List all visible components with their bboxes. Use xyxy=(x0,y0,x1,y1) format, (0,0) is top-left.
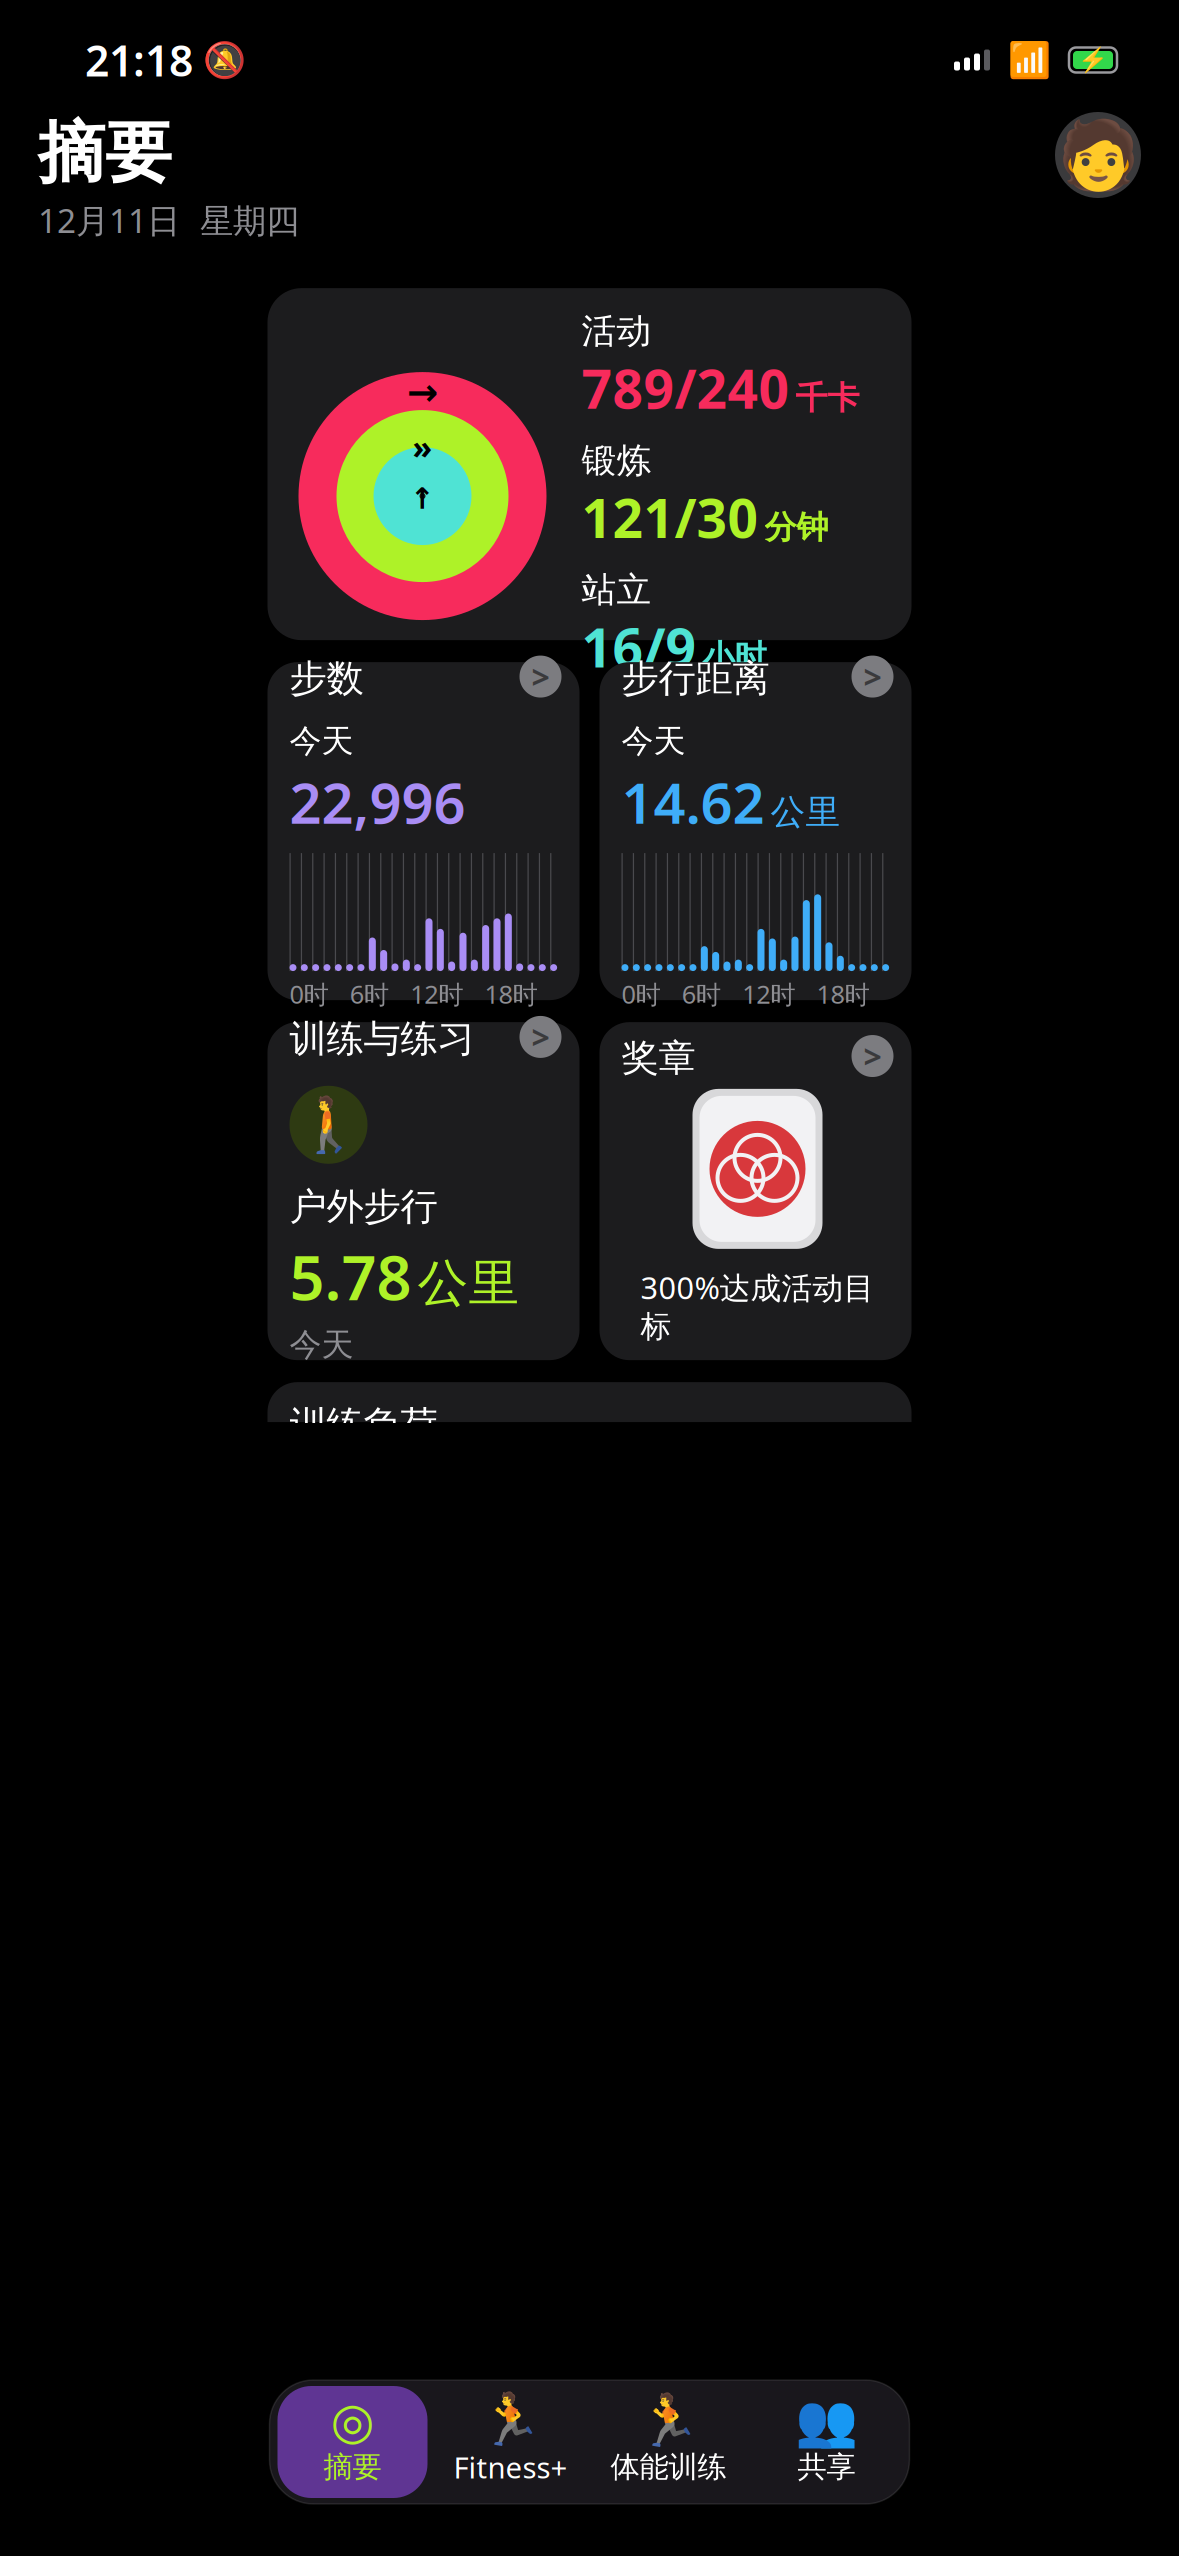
staticText: 18时 xyxy=(484,977,537,1011)
staticText: 789/240 xyxy=(581,353,789,423)
staticText: 12时 xyxy=(742,977,795,1011)
button[interactable]: 🏃 xyxy=(593,2386,743,2498)
staticText: ⚡ xyxy=(1078,46,1108,74)
staticText: 🏃 xyxy=(479,2391,542,2448)
button[interactable]: 健身圆环 xyxy=(267,288,911,640)
staticText: 训练与练习 xyxy=(289,1016,474,1062)
button[interactable]: 步行距离 xyxy=(599,662,911,1000)
button[interactable]: 奖章 xyxy=(599,1022,911,1360)
staticText: 12时 xyxy=(410,977,463,1011)
staticText: 步行距离 xyxy=(621,656,769,701)
button[interactable]: 训练与练习 xyxy=(267,1022,579,1360)
staticText: > xyxy=(531,655,549,698)
staticText: » xyxy=(412,425,432,468)
staticText: 12月11日 星期四 xyxy=(38,198,299,242)
staticText: Fitness+ xyxy=(453,2447,567,2486)
staticText: 0时 xyxy=(621,977,660,1011)
staticText: 0时 xyxy=(289,977,328,1011)
button[interactable]: 🏃 xyxy=(435,2386,585,2498)
staticText: 22,996 xyxy=(289,765,465,839)
button[interactable]: 步数 xyxy=(267,662,579,1000)
staticText: 14.62 xyxy=(621,765,764,839)
staticText: 16/9 xyxy=(581,611,696,682)
staticText: 🏃 xyxy=(637,2392,700,2450)
staticText: > xyxy=(863,655,881,698)
staticText: 300%达成活动目标 xyxy=(640,1267,874,1345)
staticText: 21:18 xyxy=(85,32,193,88)
staticText: ◎ xyxy=(330,2392,374,2450)
staticText: 千卡 xyxy=(795,378,859,418)
staticText: 锻炼 xyxy=(581,439,651,482)
staticText: > xyxy=(863,1035,881,1077)
staticText: 奖章 xyxy=(621,1035,695,1081)
staticText: 🚶 xyxy=(295,1094,361,1155)
staticText: 今天 xyxy=(289,1325,353,1364)
button[interactable]: 👥 xyxy=(751,2386,901,2498)
staticText: 6时 xyxy=(682,977,721,1011)
button[interactable]: 个人资料 xyxy=(1055,112,1141,198)
staticText: 6时 xyxy=(350,977,389,1011)
staticText: 训练负荷 xyxy=(289,1402,437,1448)
staticText: 📶 xyxy=(1008,40,1051,80)
staticText: 户外步行 xyxy=(289,1184,437,1230)
button[interactable]: 训练负荷 xyxy=(267,1382,911,1592)
staticText: 体能训练 xyxy=(610,2449,726,2485)
staticText: 🧑 xyxy=(1056,117,1139,193)
staticText: 小时 xyxy=(702,637,766,676)
staticText: 摘要 xyxy=(38,112,172,194)
staticText: 18时 xyxy=(816,977,869,1011)
staticText: 站立 xyxy=(581,569,651,611)
staticText: 👥 xyxy=(795,2392,858,2450)
staticText: 🔕 xyxy=(203,40,246,80)
staticText: 摘要 xyxy=(323,2449,381,2485)
staticText: ↑ xyxy=(410,482,435,515)
staticText: > xyxy=(531,1016,549,1058)
staticText: 5.78 xyxy=(289,1236,411,1317)
staticText: 分钟 xyxy=(764,508,828,547)
staticText: 今天 xyxy=(621,721,685,761)
staticText: → xyxy=(407,371,438,413)
staticText: 共享 xyxy=(797,2449,855,2485)
staticText: 今天 xyxy=(289,721,353,761)
staticText: 公里 xyxy=(417,1252,519,1314)
staticText: 步数 xyxy=(289,656,363,701)
button[interactable]: ◎ xyxy=(277,2386,427,2498)
staticText: 活动 xyxy=(581,310,651,353)
staticText: 公里 xyxy=(770,791,840,833)
staticText: 121/30 xyxy=(581,482,758,553)
